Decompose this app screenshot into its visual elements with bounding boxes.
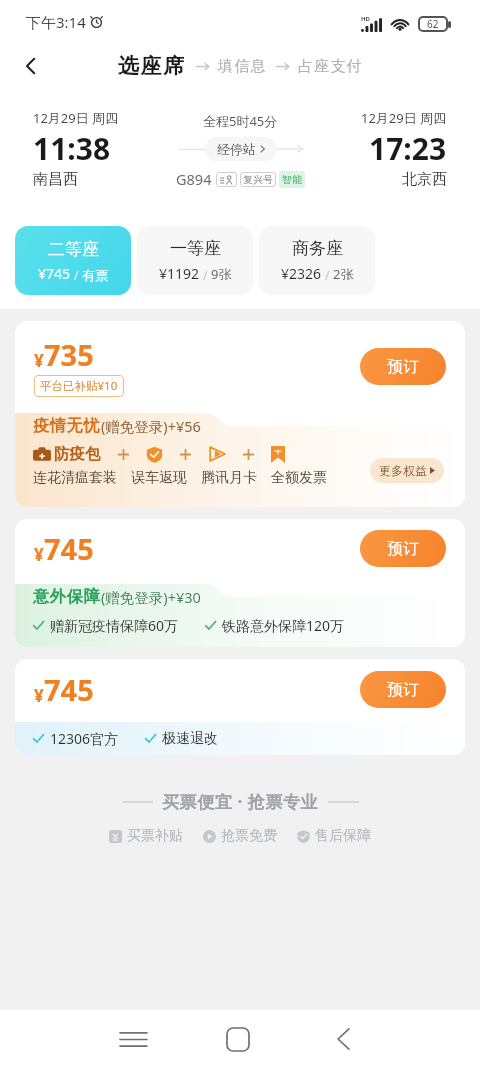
staticText: HD <box>361 15 370 23</box>
button[interactable]: Home <box>217 1018 259 1060</box>
staticText: (赠免登录)+¥56 <box>101 416 201 436</box>
staticText: 预订 <box>387 680 419 700</box>
button[interactable]: 预订 <box>360 671 446 708</box>
staticText: 下午3:14 <box>26 12 86 32</box>
staticText: 全额发票 <box>271 469 327 487</box>
staticText: 平台已补贴¥10 <box>40 378 118 394</box>
staticText: 12月29日 周四 <box>33 109 119 127</box>
button[interactable]: 商务座 <box>259 226 375 295</box>
staticText: ¥745 <box>38 264 71 283</box>
staticText: 抢票免费 <box>221 827 277 845</box>
staticText: 极速退改 <box>162 730 218 748</box>
staticText: 二等座 <box>48 239 99 260</box>
staticText: 铁路意外保障120万 <box>222 616 345 635</box>
staticText: 全程5时45分 <box>203 112 278 130</box>
staticText: 南昌西 <box>33 170 78 189</box>
staticText: ¥1192 <box>159 264 200 283</box>
staticText: / <box>200 267 211 283</box>
staticText: 62 <box>427 17 439 31</box>
staticText: 商务座 <box>292 238 343 259</box>
staticText: 售后保障 <box>315 827 371 845</box>
staticText: 745 <box>44 529 94 568</box>
staticText: 疫情无忧 <box>33 416 101 436</box>
staticText: (赠免登录)+¥30 <box>101 587 201 607</box>
staticText: 连花清瘟套装 <box>33 469 117 487</box>
button[interactable]: 更多权益 <box>370 458 444 483</box>
staticText: ¥2326 <box>281 264 322 283</box>
staticText: 735 <box>44 335 94 374</box>
staticText: / <box>71 267 82 283</box>
staticText: 745 <box>44 670 94 709</box>
staticText: 北京西 <box>402 170 447 189</box>
button[interactable]: Back <box>10 45 52 87</box>
staticText: 买票便宜 · 抢票专业 <box>162 790 319 813</box>
staticText: 一等座 <box>170 238 221 259</box>
staticText: 有票 <box>82 267 108 283</box>
staticText: 误车返现 <box>131 469 187 487</box>
staticText: 复兴号 <box>243 173 273 186</box>
staticText: G894 <box>176 169 212 189</box>
staticText: / <box>322 267 333 283</box>
staticText: 12月29日 周四 <box>361 109 447 127</box>
staticText: 智能 <box>282 173 302 186</box>
button[interactable]: ¥ <box>15 519 465 647</box>
button[interactable]: ¥ <box>15 659 465 755</box>
button[interactable]: Recent apps <box>112 1018 154 1060</box>
staticText: 买票补贴 <box>127 827 183 845</box>
staticText: 经停站 <box>217 141 256 157</box>
staticText: 更多权益 <box>379 463 427 478</box>
staticText: 2张 <box>333 265 354 283</box>
staticText: 预订 <box>387 357 419 377</box>
button[interactable]: 预订 <box>360 530 446 567</box>
staticText: 赠新冠疫情保障60万 <box>50 616 179 635</box>
staticText: 意外保障 <box>33 587 101 607</box>
staticText: 预订 <box>387 539 419 559</box>
button[interactable]: 经停站 <box>205 137 277 161</box>
button[interactable]: 一等座 <box>137 226 253 295</box>
staticText: 9张 <box>211 265 232 283</box>
button[interactable]: 二等座 <box>15 226 131 295</box>
staticText: 防疫包 <box>54 444 101 464</box>
button[interactable]: ¥ <box>15 321 465 507</box>
button[interactable]: 预订 <box>360 348 446 385</box>
staticText: 填信息 <box>218 57 267 76</box>
staticText: ¥ <box>34 684 44 707</box>
staticText: 选座席 <box>118 53 186 79</box>
staticText: ¥ <box>34 543 44 566</box>
staticText: ¥ <box>34 349 44 372</box>
staticText: 11:38 <box>33 128 111 169</box>
staticText: 占座支付 <box>298 57 363 76</box>
staticText: 17:23 <box>369 128 447 169</box>
button[interactable]: Back <box>322 1018 364 1060</box>
staticText: 12306官方 <box>50 729 119 748</box>
staticText: 腾讯月卡 <box>201 469 257 487</box>
